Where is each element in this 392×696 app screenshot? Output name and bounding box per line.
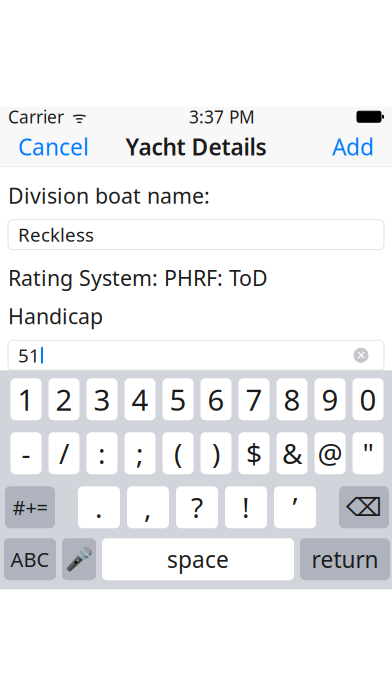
button[interactable]: 9 xyxy=(314,378,345,420)
staticText: return xyxy=(311,544,378,574)
staticText: 3:37 PM xyxy=(189,105,255,128)
button[interactable]: Letters xyxy=(4,538,56,580)
button[interactable]: ( xyxy=(162,432,193,474)
staticText: ᯤ xyxy=(64,106,87,127)
button[interactable]: , xyxy=(127,486,169,528)
staticText: ’ xyxy=(292,489,297,526)
staticText: ! xyxy=(242,489,250,526)
staticText: ✕ xyxy=(356,348,366,362)
staticText: Reckless xyxy=(18,222,94,247)
button[interactable]: " xyxy=(352,432,383,474)
staticText: 3 xyxy=(93,380,110,419)
staticText: Cancel xyxy=(18,132,89,162)
staticText: 4 xyxy=(131,380,148,419)
button[interactable]: : xyxy=(86,432,117,474)
button[interactable]: ) xyxy=(200,432,231,474)
button[interactable]: 2 xyxy=(48,378,79,420)
button[interactable]: 6 xyxy=(200,378,231,420)
button[interactable]: ? xyxy=(176,486,218,528)
button[interactable]: 0 xyxy=(352,378,383,420)
staticText: ? xyxy=(191,489,203,526)
staticText: ⌫ xyxy=(346,493,382,522)
staticText: Handicap xyxy=(8,302,103,330)
button[interactable]: More symbols xyxy=(5,486,55,528)
staticText: 0 xyxy=(359,380,376,419)
button[interactable]: / xyxy=(48,432,79,474)
staticText: ( xyxy=(174,435,182,472)
staticText: 9 xyxy=(321,380,338,419)
staticText: $ xyxy=(246,435,262,472)
staticText: 7 xyxy=(245,380,262,419)
button[interactable]: Add xyxy=(322,127,384,167)
staticText: ; xyxy=(136,435,144,472)
button[interactable]: @ xyxy=(314,432,345,474)
staticText: Division boat name: xyxy=(8,181,210,210)
staticText: Yacht Details xyxy=(125,132,266,162)
staticText: 51 xyxy=(18,343,40,368)
button[interactable]: - xyxy=(10,432,41,474)
button[interactable]: return xyxy=(300,538,390,580)
button[interactable]: space xyxy=(102,538,294,580)
staticText: 🎤 xyxy=(65,546,93,572)
button[interactable]: 1 xyxy=(10,378,41,420)
button[interactable]: ; xyxy=(124,432,155,474)
staticText: " xyxy=(362,435,373,472)
staticText: . xyxy=(95,489,103,526)
button[interactable]: 3 xyxy=(86,378,117,420)
button[interactable]: Dictation xyxy=(62,538,96,580)
button[interactable]: Clear text xyxy=(348,342,374,368)
button[interactable]: ! xyxy=(225,486,267,528)
staticText: 8 xyxy=(283,380,300,419)
button[interactable]: ’ xyxy=(274,486,316,528)
staticText: 1 xyxy=(17,380,34,419)
staticText: #+= xyxy=(12,494,47,521)
button[interactable]: & xyxy=(276,432,307,474)
button[interactable]: 7 xyxy=(238,378,269,420)
staticText: ABC xyxy=(10,546,49,573)
staticText: Add xyxy=(332,132,374,162)
button[interactable]: 8 xyxy=(276,378,307,420)
staticText: 6 xyxy=(207,380,224,419)
button[interactable]: $ xyxy=(238,432,269,474)
button[interactable]: Cancel xyxy=(8,127,99,167)
staticText: 2 xyxy=(55,380,72,419)
button[interactable]: . xyxy=(78,486,120,528)
button[interactable]: 5 xyxy=(162,378,193,420)
staticText: @ xyxy=(317,435,342,472)
button[interactable]: 4 xyxy=(124,378,155,420)
staticText: - xyxy=(21,435,30,472)
staticText: Rating System: PHRF: ToD xyxy=(8,264,268,292)
button[interactable]: Delete xyxy=(339,486,389,528)
staticText: , xyxy=(144,489,152,526)
staticText: space xyxy=(167,544,229,574)
staticText: 5 xyxy=(169,380,186,419)
staticText: / xyxy=(59,435,69,472)
staticText: Carrier xyxy=(8,105,64,128)
staticText: ) xyxy=(212,435,220,472)
staticText: : xyxy=(98,435,106,472)
staticText: & xyxy=(282,435,302,472)
